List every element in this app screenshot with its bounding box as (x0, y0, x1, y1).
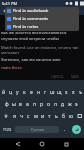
staticText: . (64, 126, 66, 133)
button[interactable]: Back (12, 138, 24, 150)
staticText: т (48, 113, 51, 120)
staticText: ш (50, 89, 55, 96)
staticText: ю (69, 113, 73, 120)
staticText: й (2, 89, 6, 96)
staticText: CANCEL (51, 74, 64, 79)
staticText: ц (9, 89, 13, 96)
button[interactable]: й (0, 86, 7, 98)
button[interactable]: ц (7, 86, 14, 98)
button[interactable]: ф (4, 98, 10, 110)
button[interactable]: з (63, 86, 70, 98)
staticText: х (72, 89, 75, 96)
button[interactable]: Find in audiobook (5, 7, 79, 15)
button[interactable]: Back (2, 8, 8, 14)
button[interactable]: с (25, 110, 32, 122)
staticText: и (41, 113, 45, 120)
staticText: о (47, 101, 50, 108)
button[interactable]: к (21, 86, 28, 98)
button[interactable]: д (59, 98, 66, 110)
staticText: я (13, 113, 16, 120)
button[interactable]: я (11, 110, 18, 122)
staticText: ч (20, 113, 23, 120)
button[interactable]: SAVE (69, 74, 81, 79)
staticText: 6:41 PM (2, 1, 18, 6)
staticText: ж (68, 101, 72, 108)
button[interactable]: Enter (72, 125, 81, 134)
staticText: Хотелось, как же хочется мне (1, 57, 61, 63)
button[interactable]: н (35, 86, 42, 98)
button[interactable]: ю (67, 110, 74, 122)
button[interactable]: т (46, 110, 53, 122)
staticText: е (30, 89, 33, 96)
button[interactable]: о (45, 98, 52, 110)
staticText: м (34, 113, 38, 120)
staticText: с (27, 113, 30, 120)
button[interactable]: . (60, 123, 69, 135)
button[interactable]: г (42, 86, 49, 98)
staticText: р (40, 101, 44, 108)
staticText: а (26, 101, 29, 108)
staticText: тоже быть (1, 65, 22, 71)
button[interactable]: а (24, 98, 31, 110)
button[interactable]: Find in notes (5, 23, 79, 31)
button[interactable]: ш (49, 86, 56, 98)
button[interactable]: л (52, 98, 59, 110)
button[interactable]: Find in comments (5, 15, 79, 23)
button[interactable]: Русский (15, 126, 59, 133)
button[interactable]: ?123 (1, 123, 14, 135)
button[interactable]: х (70, 86, 77, 98)
staticText: д (61, 101, 65, 108)
button[interactable]: и (39, 110, 46, 122)
button[interactable]: ъ (77, 86, 84, 98)
staticText: э (75, 101, 78, 108)
button[interactable]: Home (36, 138, 48, 150)
button[interactable]: э (73, 98, 80, 110)
button[interactable]: м (32, 110, 39, 122)
staticText: ы (12, 101, 16, 108)
staticText: SAVE (71, 74, 79, 79)
button[interactable]: ы (10, 98, 17, 110)
button[interactable]: е (28, 86, 35, 98)
staticText: у (16, 89, 19, 96)
staticText: г (44, 89, 47, 96)
staticText: з (65, 89, 68, 96)
button[interactable]: Recents (60, 138, 72, 150)
button[interactable]: ж (66, 98, 73, 110)
staticText: ф (5, 101, 9, 108)
button[interactable]: р (38, 98, 45, 110)
staticText: н (37, 89, 41, 96)
staticText: ь (55, 113, 58, 120)
staticText: Find in comments (13, 16, 49, 22)
staticText: Find in audiobook (13, 8, 49, 14)
staticText: б (62, 113, 65, 120)
staticText: ?123 (3, 127, 12, 132)
button[interactable]: п (31, 98, 38, 110)
staticText: Русский (31, 127, 44, 132)
button[interactable]: Backspace (74, 110, 84, 122)
button[interactable]: ь (53, 110, 60, 122)
staticText: л (54, 101, 57, 108)
button[interactable]: щ (56, 86, 63, 98)
staticText: Find in notes (13, 24, 39, 30)
staticText: к (23, 89, 26, 96)
button[interactable]: у (14, 86, 21, 98)
button[interactable]: CANCEL (49, 74, 66, 79)
staticText: Match found: use an instance, отчего так… (1, 45, 83, 55)
staticText: ъ (79, 89, 83, 96)
staticText: как же хочется воспользоваться случаем э… (1, 30, 83, 41)
staticText: п (33, 101, 37, 108)
button[interactable]: Shift (0, 110, 11, 122)
staticText: Search book (10, 9, 34, 14)
button[interactable]: б (60, 110, 67, 122)
button[interactable]: ч (18, 110, 25, 122)
button[interactable]: в (17, 98, 24, 110)
staticText: в (19, 101, 22, 108)
staticText: щ (57, 89, 62, 96)
